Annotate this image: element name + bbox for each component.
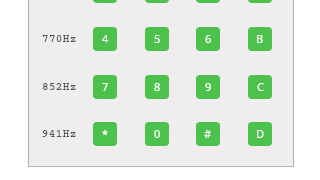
button[interactable]: DTMF key 5 [145,27,169,51]
button[interactable]: DTMF key # [196,122,220,146]
staticText: 9 [205,79,212,94]
staticText: D [256,126,265,141]
button[interactable]: DTMF key 6 [196,27,220,51]
button[interactable]: DTMF key B [248,27,272,51]
staticText: 7 [102,79,109,94]
button[interactable]: DTMF key C [248,75,272,99]
staticText: B [256,31,264,46]
button[interactable]: DTMF key 0 [145,122,169,146]
button[interactable]: DTMF key 4 [93,27,117,51]
button[interactable]: DTMF key * [93,122,117,146]
button[interactable]: DTMF key 8 [145,75,169,99]
button[interactable]: DTMF key 2 [145,0,169,3]
staticText: 4 [102,31,109,46]
staticText: 8 [154,79,161,94]
button[interactable]: DTMF key 1 [93,0,117,3]
button[interactable]: DTMF key 3 [196,0,220,3]
button[interactable]: DTMF key 9 [196,75,220,99]
staticText: * [102,126,109,141]
button[interactable]: DTMF key A [248,0,272,3]
button[interactable]: DTMF key 7 [93,75,117,99]
staticText: C [257,79,264,94]
staticText: 5 [154,31,161,46]
staticText: 6 [205,31,212,46]
staticText: # [204,126,212,141]
staticText: 0 [154,126,161,141]
staticText: 852Hz [42,81,77,93]
staticText: 941Hz [42,128,77,140]
staticText: 770Hz [42,33,77,45]
button[interactable]: DTMF key D [248,122,272,146]
